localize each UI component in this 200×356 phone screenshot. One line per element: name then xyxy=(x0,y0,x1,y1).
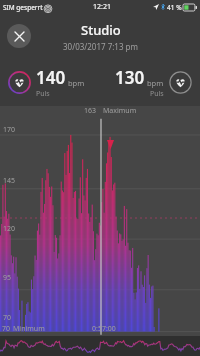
staticText: 163 xyxy=(84,106,97,116)
staticText: Puls xyxy=(150,89,164,99)
staticText: 145 xyxy=(3,176,16,186)
staticText: bpm xyxy=(68,78,85,88)
staticText: SIM gesperrt xyxy=(3,3,43,12)
staticText: 12:21 xyxy=(93,2,111,12)
staticText: bpm xyxy=(147,78,164,88)
staticText: Minimum xyxy=(13,324,45,334)
staticText: Maximum xyxy=(103,106,137,116)
staticText: 70 xyxy=(2,324,11,334)
staticText: 0:57:00 xyxy=(92,324,116,334)
staticText: 140 xyxy=(36,66,66,89)
staticText: 130 xyxy=(115,66,145,89)
button[interactable]: Average heart rate xyxy=(8,71,31,94)
staticText: 70 xyxy=(3,313,12,323)
staticText: 95 xyxy=(3,273,12,283)
staticText: 30/03/2017 7:13 pm xyxy=(63,41,138,52)
staticText: 120 xyxy=(3,224,16,234)
staticText: Studio xyxy=(81,21,121,39)
staticText: 41 % xyxy=(167,3,182,12)
button[interactable]: Current heart rate xyxy=(169,71,192,94)
staticText: 170 xyxy=(3,125,16,135)
button[interactable]: Close xyxy=(7,24,31,48)
staticText: Puls xyxy=(36,89,50,99)
